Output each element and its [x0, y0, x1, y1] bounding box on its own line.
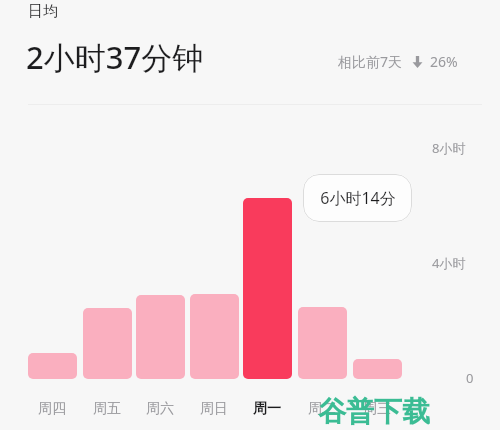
- staticText: 日均: [28, 2, 58, 21]
- button[interactable]: 6小时14分: [303, 174, 412, 222]
- button[interactable]: Bar 3: [136, 295, 185, 379]
- button[interactable]: 周六: [134, 396, 186, 422]
- staticText: 周五: [93, 400, 121, 418]
- staticText: 周四: [38, 400, 66, 418]
- button[interactable]: 周一: [241, 396, 293, 422]
- staticText: 周日: [200, 400, 228, 418]
- button[interactable]: Bar 6: [298, 307, 347, 379]
- staticText: 周三: [363, 400, 391, 418]
- staticText: 相比前7天: [338, 52, 403, 71]
- staticText: 0: [466, 369, 474, 387]
- button[interactable]: Bar 7: [353, 359, 402, 379]
- button[interactable]: Bar 4: [190, 294, 239, 379]
- staticText: 26%: [430, 52, 458, 71]
- button[interactable]: Bar 5: [243, 198, 292, 379]
- staticText: 8小时: [432, 139, 466, 157]
- button[interactable]: Bar 1: [28, 353, 77, 379]
- button[interactable]: 周二: [296, 396, 348, 422]
- button[interactable]: 周日: [188, 396, 240, 422]
- staticText: 4小时: [432, 254, 466, 272]
- button[interactable]: 周三: [351, 396, 403, 422]
- staticText: 周一: [253, 400, 281, 418]
- button[interactable]: 周五: [81, 396, 133, 422]
- button[interactable]: 周四: [26, 396, 78, 422]
- staticText: 周六: [146, 400, 174, 418]
- staticText: 2小时37分钟: [26, 36, 204, 78]
- button[interactable]: 相比前7天: [336, 50, 405, 73]
- staticText: 周二: [308, 400, 336, 418]
- staticText: 谷普下载: [318, 394, 430, 429]
- button[interactable]: Bar 2: [83, 308, 132, 379]
- staticText: 6小时14分: [320, 187, 396, 209]
